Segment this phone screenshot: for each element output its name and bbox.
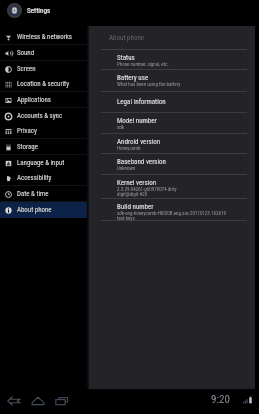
button[interactable]: Recent apps xyxy=(55,394,69,408)
staticText: sdk xyxy=(117,124,125,130)
staticText: About phone xyxy=(109,34,145,42)
staticText: Wireless & networks xyxy=(17,33,72,41)
button[interactable]: Storage xyxy=(0,139,87,155)
staticText: Phone number, signal, etc. xyxy=(117,61,169,67)
button[interactable]: Kernel version xyxy=(89,174,255,197)
staticText: Unknown xyxy=(117,165,136,171)
button[interactable]: Status xyxy=(89,49,255,69)
button[interactable]: Wireless & networks xyxy=(0,29,87,45)
staticText: Screen xyxy=(17,65,36,73)
staticText: 2.3.29-04261-g00970074-dirty digit@digit… xyxy=(117,186,177,197)
staticText: Baseband version xyxy=(117,158,166,166)
button[interactable]: Accessibility xyxy=(0,170,87,186)
staticText: Accounts & sync xyxy=(17,112,63,120)
button[interactable]: Battery use xyxy=(89,69,255,91)
staticText: Legal information xyxy=(117,98,166,106)
staticText: Applications xyxy=(17,96,51,104)
staticText: Sound xyxy=(17,49,35,57)
button[interactable]: Accounts & sync xyxy=(0,108,87,124)
button[interactable]: Legal information xyxy=(89,91,255,112)
button[interactable]: Back xyxy=(7,394,21,408)
button[interactable]: About phone xyxy=(0,202,87,218)
staticText: Location & security xyxy=(17,80,70,88)
button[interactable]: Model number xyxy=(89,112,255,134)
button[interactable]: Language & input xyxy=(0,155,87,171)
button[interactable]: Privacy xyxy=(0,123,87,139)
button[interactable]: Status xyxy=(242,394,255,407)
staticText: Honeycomb xyxy=(117,145,141,151)
button[interactable]: Android version xyxy=(89,133,255,153)
staticText: sdk-eng-honeycomb-HRI20B.eng.xav.2011012… xyxy=(117,210,226,221)
staticText: What has been using the battery xyxy=(117,81,181,87)
staticText: Storage xyxy=(17,143,38,151)
staticText: Settings xyxy=(27,6,51,14)
staticText: Battery use xyxy=(117,74,149,82)
staticText: Status xyxy=(117,54,135,62)
staticText: Privacy xyxy=(17,127,37,135)
button[interactable]: Home xyxy=(31,394,45,408)
staticText: 9:20 xyxy=(211,393,230,406)
button[interactable]: Screen xyxy=(0,61,87,77)
staticText: Language & input xyxy=(17,159,65,167)
button[interactable]: Baseband version xyxy=(89,153,255,174)
button[interactable]: Sound xyxy=(0,45,87,61)
staticText: Accessibility xyxy=(17,174,52,182)
staticText: Android version xyxy=(117,138,161,146)
button[interactable]: Applications xyxy=(0,92,87,108)
staticText: Kernel version xyxy=(117,179,157,187)
staticText: Model number xyxy=(117,117,157,125)
button[interactable]: Build number xyxy=(89,198,255,220)
staticText: Build number xyxy=(117,203,154,211)
staticText: About phone xyxy=(17,206,52,214)
staticText: Date & time xyxy=(17,190,49,198)
button[interactable]: Date & time xyxy=(0,186,87,202)
button[interactable]: Location & security xyxy=(0,76,87,92)
